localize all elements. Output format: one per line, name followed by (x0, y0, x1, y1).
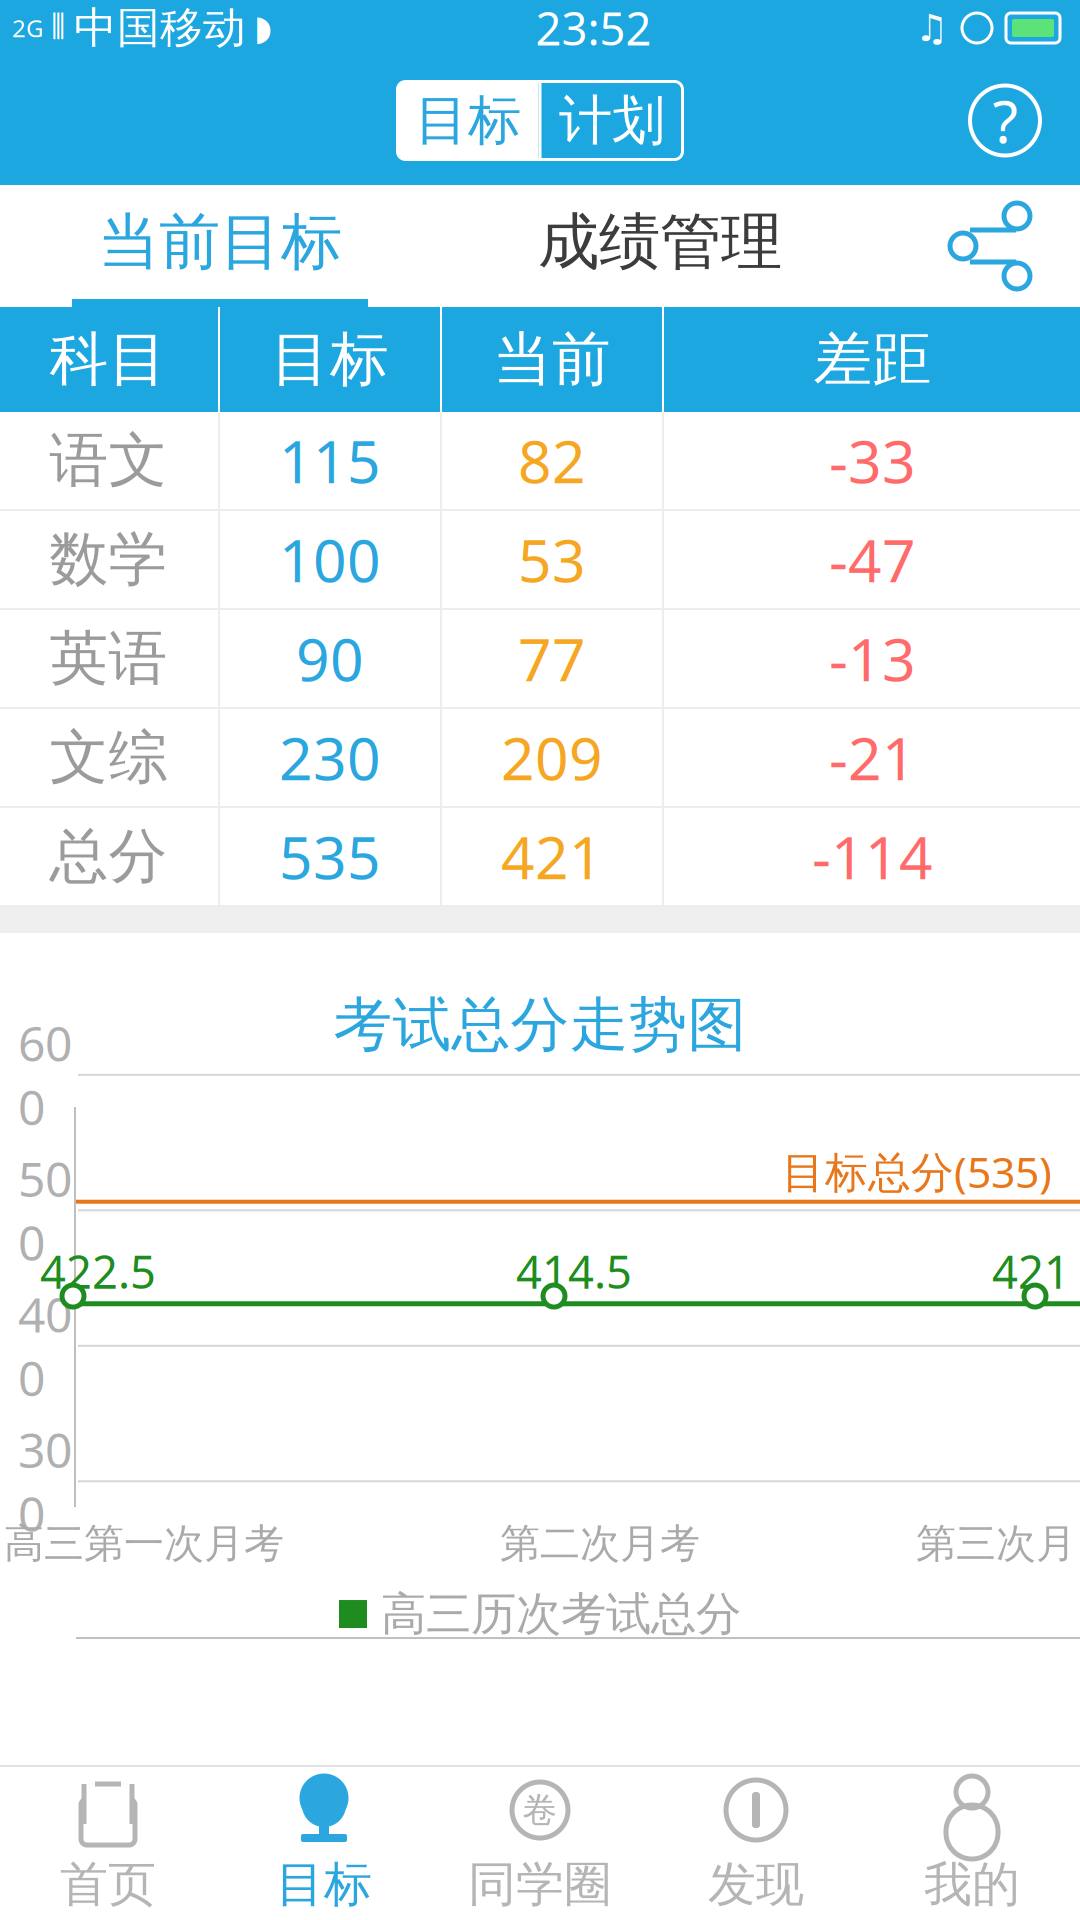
staticText: 高三历次考试总分 (381, 1586, 741, 1642)
staticText: 209 (501, 718, 603, 796)
staticText: 第二次月考 (500, 1519, 700, 1568)
staticText: 77 (518, 619, 586, 697)
staticText: 当前 (493, 323, 611, 396)
staticText: 总分 (49, 820, 167, 893)
staticText: 计划 (559, 88, 665, 153)
staticText: 语文 (49, 424, 167, 497)
button[interactable]: 我的 (864, 1767, 1080, 1920)
staticText: ⦀ (51, 11, 66, 45)
staticText: 300 (18, 1417, 72, 1545)
staticText: -33 (829, 421, 916, 499)
staticText: 2G (12, 12, 43, 44)
staticText: 500 (18, 1147, 72, 1274)
staticText: 科目 (49, 323, 167, 396)
staticText: -47 (829, 520, 916, 598)
staticText: 230 (279, 718, 381, 796)
staticText: 目标总分(535) (782, 1143, 1052, 1200)
button[interactable]: 当前目标 (0, 185, 440, 307)
staticText: 53 (518, 520, 586, 598)
staticText: 差距 (813, 323, 931, 396)
staticText: 90 (296, 619, 364, 697)
button[interactable]: 发现 (648, 1767, 864, 1920)
staticText: 600 (18, 1011, 72, 1139)
staticText: 414.5 (516, 1241, 632, 1301)
staticText: 英语 (49, 622, 167, 695)
button[interactable]: 成绩管理 (440, 185, 880, 307)
staticText: ◗ (254, 8, 272, 48)
button[interactable]: 目标 (397, 81, 538, 159)
staticText: 发现 (708, 1855, 804, 1914)
staticText: 目标 (271, 323, 389, 396)
staticText: 535 (279, 817, 381, 895)
staticText: 第三次月 (916, 1519, 1076, 1568)
staticText: 同学圈 (468, 1855, 612, 1914)
staticText: 100 (279, 520, 381, 598)
button[interactable]: 首页 (0, 1767, 216, 1920)
staticText: 高三第一次月考 (4, 1519, 284, 1568)
staticText: -114 (812, 817, 933, 895)
staticText: 成绩管理 (538, 204, 782, 280)
button[interactable]: 卷 (432, 1767, 648, 1920)
staticText: 目标 (415, 88, 521, 153)
staticText: -21 (829, 718, 916, 796)
staticText: 中国移动 (74, 2, 246, 54)
staticText: 首页 (60, 1855, 156, 1914)
staticText: -13 (829, 619, 916, 697)
staticText: 我的 (924, 1855, 1020, 1914)
button[interactable]: 帮助 (970, 85, 1040, 155)
staticText: 82 (518, 421, 586, 499)
staticText: 421 (992, 1241, 1070, 1301)
staticText: 115 (279, 421, 381, 499)
staticText: 23:52 (535, 0, 651, 58)
staticText: 卷 (522, 1789, 557, 1831)
staticText: 数学 (49, 523, 167, 596)
staticText: 422.5 (40, 1241, 156, 1301)
staticText: 文综 (49, 721, 167, 794)
button[interactable]: 目标 (216, 1767, 432, 1920)
staticText: 400 (18, 1282, 72, 1410)
staticText: 目标 (276, 1855, 372, 1914)
staticText: ♫ (915, 7, 948, 49)
staticText: 考试总分走势图 (333, 989, 746, 1061)
button[interactable]: 计划 (541, 81, 682, 159)
button[interactable]: 分享 (944, 201, 1034, 291)
staticText: ? (992, 81, 1017, 159)
staticText: 421 (501, 817, 603, 895)
staticText: 当前目标 (98, 204, 342, 280)
